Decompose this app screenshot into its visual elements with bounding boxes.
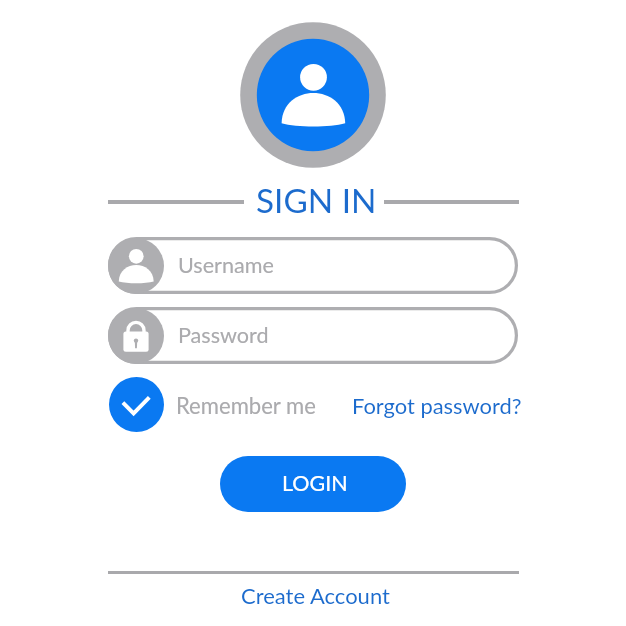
button[interactable]: Password xyxy=(108,307,518,364)
button[interactable]: LOGIN xyxy=(220,456,406,512)
staticText: Username xyxy=(178,252,274,278)
button[interactable]: Remember me xyxy=(109,377,164,432)
button[interactable]: Forgot password? xyxy=(352,392,522,418)
button[interactable]: Username xyxy=(108,237,518,294)
staticText: LOGIN xyxy=(282,470,348,496)
button[interactable]: Create Account xyxy=(241,582,390,608)
staticText: SIGN IN xyxy=(256,180,377,220)
button[interactable]: Remember me xyxy=(176,392,316,419)
staticText: Password xyxy=(178,322,269,348)
